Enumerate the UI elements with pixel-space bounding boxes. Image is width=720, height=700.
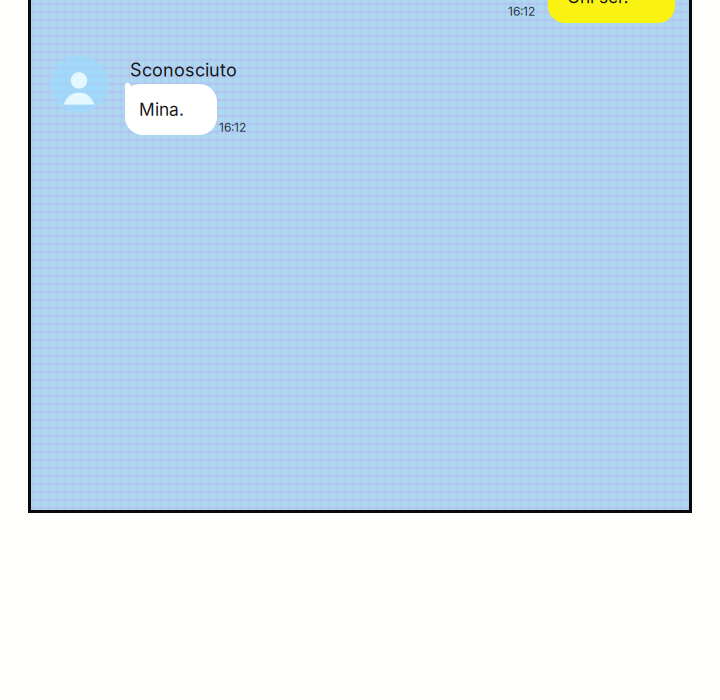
staticText: Chi sei? — [567, 0, 631, 7]
button[interactable]: Profilo di Sconosciuto — [50, 55, 108, 113]
staticText: Mina. — [139, 99, 184, 120]
button[interactable]: Mina. — [117, 84, 217, 135]
staticText: 16:12 — [508, 4, 535, 18]
staticText: 16:12 — [219, 120, 246, 134]
button[interactable]: Chi sei? — [548, 0, 675, 23]
staticText: Sconosciuto — [130, 59, 237, 81]
